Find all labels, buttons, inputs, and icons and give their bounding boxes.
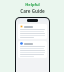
- button[interactable]: Watering: [18, 41, 47, 58]
- other: Sunlight: [20, 25, 23, 28]
- staticText: Helpful: [25, 2, 40, 7]
- staticText: Care Guide: [20, 8, 45, 14]
- button[interactable]: Sunlight: [18, 24, 47, 39]
- other: Watering: [20, 42, 23, 45]
